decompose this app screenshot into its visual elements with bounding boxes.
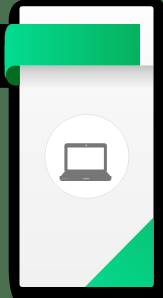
button[interactable]: Laptop device card (0, 0, 163, 298)
